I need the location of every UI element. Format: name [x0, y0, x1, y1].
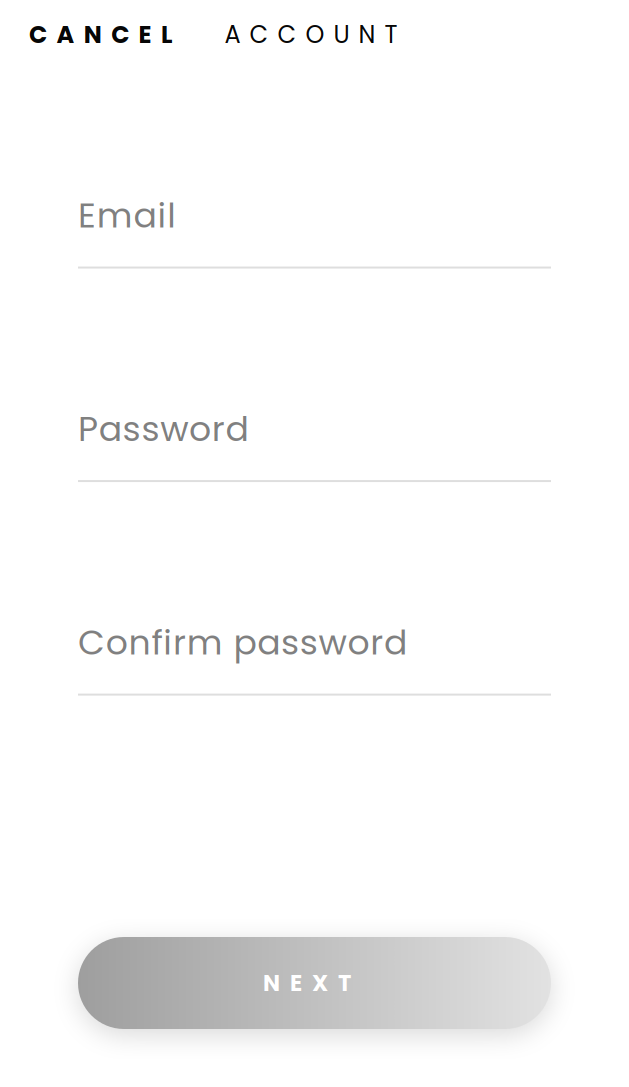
button[interactable]: CANCEL	[29, 18, 186, 51]
staticText: NEXT	[263, 967, 366, 999]
button[interactable]: Confirm password	[78, 618, 551, 696]
staticText: CANCEL	[29, 18, 186, 51]
staticText: Password	[78, 404, 258, 453]
staticText: Confirm password	[78, 618, 417, 667]
staticText: ACCOUNT	[224, 18, 412, 51]
button[interactable]: NEXT	[78, 937, 551, 1029]
staticText: Email	[78, 191, 186, 239]
button[interactable]: Email	[78, 191, 551, 268]
button[interactable]: Password	[78, 404, 551, 482]
